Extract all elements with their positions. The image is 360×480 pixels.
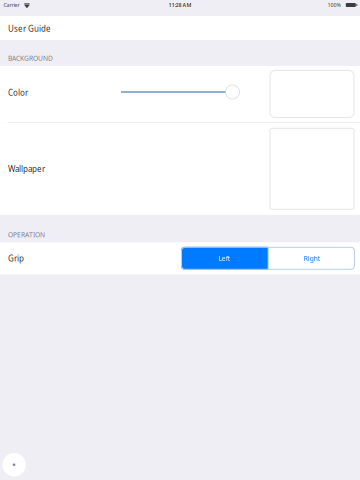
staticText: Right: [304, 254, 320, 263]
staticText: Carrier: [4, 1, 20, 9]
staticText: Wallpaper: [8, 163, 45, 174]
button[interactable]: Options: [2, 453, 26, 476]
button[interactable]: Left: [181, 247, 267, 270]
staticText: OPERATION: [8, 230, 45, 239]
staticText: Grip: [8, 253, 24, 264]
staticText: BACKGROUND: [8, 54, 53, 63]
staticText: 100%: [328, 1, 341, 9]
staticText: Left: [219, 254, 230, 263]
button[interactable]: User Guide: [0, 16, 360, 40]
button[interactable]: Right: [268, 247, 355, 270]
staticText: 11:28 AM: [168, 1, 191, 9]
staticText: User Guide: [8, 23, 51, 34]
staticText: Color: [8, 87, 28, 98]
